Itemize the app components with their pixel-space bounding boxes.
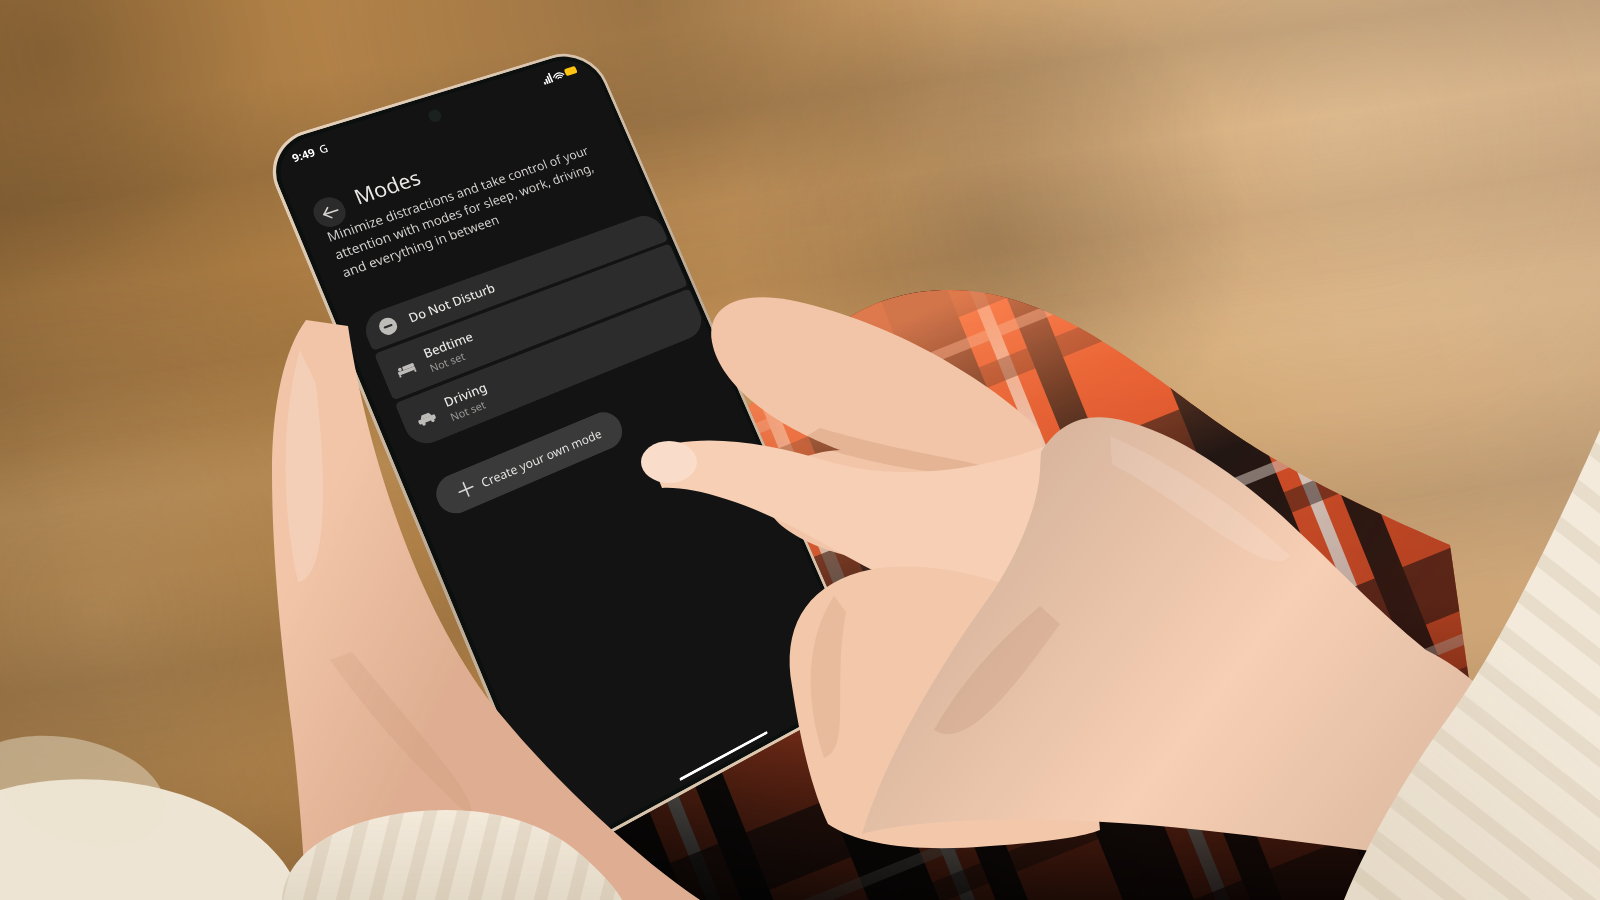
staticText: Create your own mode <box>478 425 604 490</box>
button[interactable]: Back <box>309 193 350 231</box>
button[interactable]: Driving <box>395 288 708 450</box>
button[interactable]: Bedtime <box>374 243 688 400</box>
staticText: Not set <box>448 397 488 424</box>
staticText: Bedtime <box>421 328 476 362</box>
staticText: Not set <box>427 349 467 375</box>
staticText: Driving <box>441 378 490 411</box>
staticText: 9:49 <box>289 144 317 165</box>
button[interactable]: Create your own mode <box>430 407 628 520</box>
staticText: G <box>316 140 330 157</box>
staticText: Minimize distractions and take control o… <box>324 138 616 281</box>
staticText: Modes <box>350 163 425 211</box>
staticText: Do Not Disturb <box>406 279 498 326</box>
button[interactable]: Do Not Disturb <box>359 210 668 351</box>
